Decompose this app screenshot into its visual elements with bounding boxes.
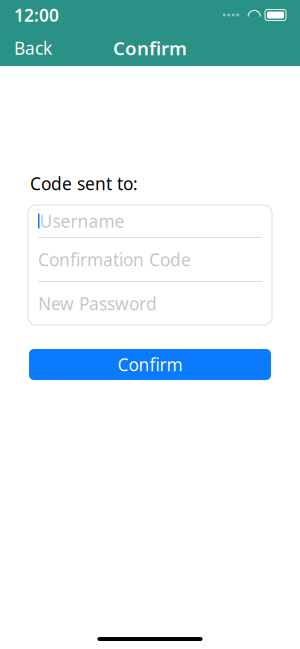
button[interactable]: Confirmation Code (28, 238, 272, 282)
staticText: Back (14, 36, 52, 59)
staticText: Code sent to: (30, 172, 138, 195)
button[interactable]: Username (28, 205, 272, 238)
button[interactable]: Back (0, 28, 66, 67)
staticText: Confirm (113, 36, 187, 60)
staticText: ◠ (247, 5, 260, 25)
staticText: Confirmation Code (38, 248, 191, 271)
staticText: New Password (38, 292, 157, 315)
staticText: Confirm (117, 353, 182, 376)
button[interactable]: New Password (28, 282, 272, 325)
staticText: Username (39, 209, 124, 232)
staticText: 12:00 (14, 3, 59, 26)
button[interactable]: Confirm (29, 349, 271, 380)
